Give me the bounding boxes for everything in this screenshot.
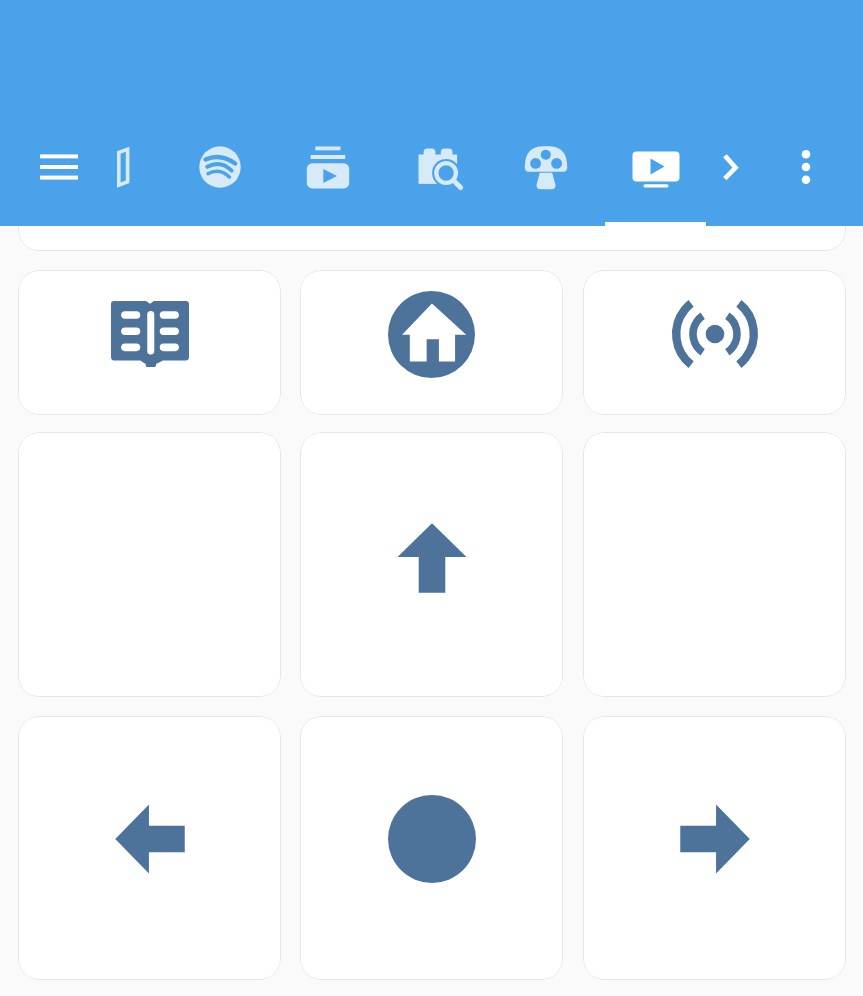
button[interactable]: TV [626,137,686,197]
other: Exit [101,145,145,189]
other: Spotify [198,145,242,189]
button[interactable]: Up [300,432,563,697]
other: Subscriptions [302,141,354,193]
button[interactable]: Spotify [190,137,250,197]
button[interactable]: More options [776,137,836,197]
button[interactable]: Select [300,716,563,980]
button[interactable]: Live TV [583,270,846,415]
button[interactable]: Right [583,716,846,980]
other: Menu [37,145,81,189]
other: Find [413,140,467,194]
button[interactable]: Find [410,137,470,197]
button[interactable]: More tabs [701,137,761,197]
other: More options [786,147,826,187]
other: More tabs [711,147,751,187]
button[interactable]: Guide [18,270,281,415]
button[interactable]: Home [300,270,563,415]
button[interactable]: Subscriptions [298,137,358,197]
other: Mushroom [520,141,572,193]
button[interactable]: Left [18,716,281,980]
button[interactable]: Power [18,106,846,251]
other: TV [631,142,681,192]
button[interactable]: Mushroom [516,137,576,197]
button[interactable]: Menu [29,137,89,197]
button[interactable]: Exit [93,137,153,197]
